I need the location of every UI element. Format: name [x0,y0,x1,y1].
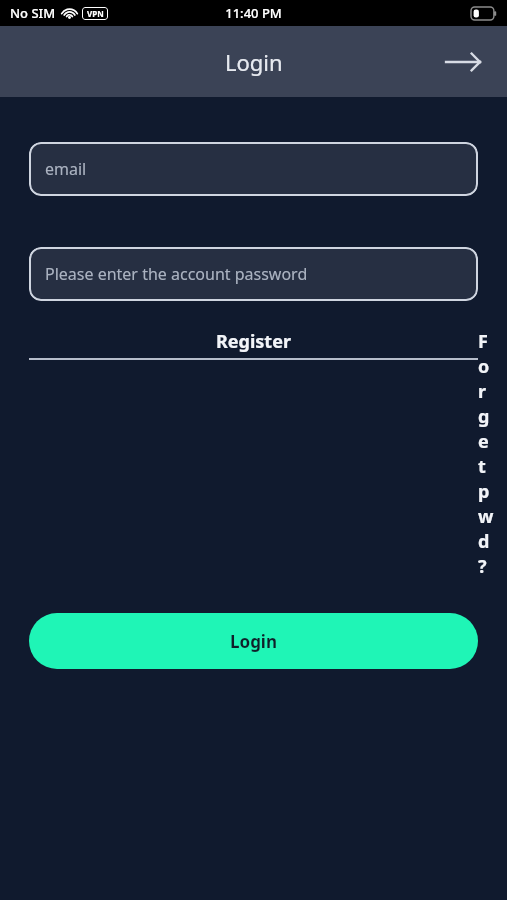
button[interactable]: Login [29,613,478,669]
staticText: Register [216,329,291,354]
staticText: VPN [87,8,104,19]
button[interactable]: Next [441,40,485,84]
button[interactable]: email [29,142,478,196]
button[interactable]: Register [29,329,478,360]
staticText: No SIM [10,4,56,22]
staticText: Login [225,47,283,77]
staticText: Login [230,630,278,653]
staticText: email [45,158,87,180]
button[interactable]: Please enter the account password [29,247,478,301]
staticText: 11:40 PM [225,4,282,22]
staticText: Please enter the account password [45,263,308,285]
